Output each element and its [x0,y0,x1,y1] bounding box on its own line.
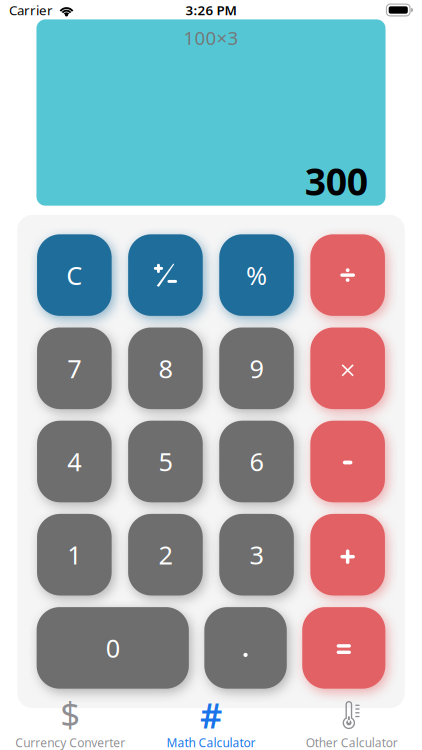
button[interactable]: Other Calculator [281,704,422,750]
button[interactable]: 8 [128,327,203,409]
staticText: Currency Converter [15,735,125,750]
staticText: Math Calculator [166,735,255,750]
staticText: % [246,258,267,292]
button[interactable]: 9 [219,327,294,409]
staticText: 3 [250,538,264,571]
staticText: 5 [158,445,172,478]
staticText: 300 [305,156,368,206]
button[interactable]: 0 [37,607,189,689]
staticText: 2 [158,538,172,571]
staticText: 9 [250,351,264,385]
button[interactable]: # [141,704,281,750]
button[interactable]: 1 [37,514,112,595]
button[interactable]: 4 [37,421,112,502]
staticText: 4 [67,445,81,478]
button[interactable]: 6 [219,421,294,502]
button[interactable]: Decimal point [204,607,287,689]
button[interactable]: 2 [128,514,203,595]
staticText: 3:26 PM [185,1,236,19]
staticText: 7 [67,351,81,385]
button[interactable]: Plus [310,514,385,595]
button[interactable]: 5 [128,421,203,502]
button[interactable]: $ [0,704,141,750]
staticText: Carrier [9,1,53,19]
button[interactable]: 3 [219,514,294,595]
staticText: 1 [67,538,81,571]
staticText: 8 [158,351,172,385]
staticText: 6 [250,445,264,478]
button[interactable]: C [37,234,112,316]
staticText: C [66,258,82,292]
button[interactable]: % [219,234,294,316]
button[interactable]: 7 [37,327,112,409]
staticText: $ [60,690,80,736]
staticText: 100×3 [183,25,238,50]
button[interactable]: Minus [310,421,385,502]
staticText: 0 [106,631,120,665]
button[interactable]: Divide [310,234,385,316]
staticText: Other Calculator [306,735,398,750]
button[interactable]: Equals [302,607,385,689]
button[interactable]: Plus minus [128,234,203,316]
button[interactable]: Multiply [310,327,385,409]
staticText: # [200,692,222,738]
